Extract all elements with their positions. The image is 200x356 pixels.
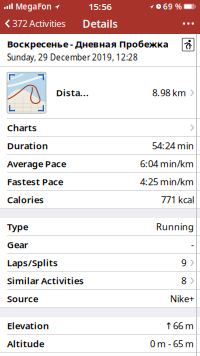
staticText: Running bbox=[156, 220, 194, 233]
button[interactable]: Fastest Pace bbox=[0, 173, 200, 191]
button[interactable]: Average Pace bbox=[0, 155, 200, 173]
staticText: Elevation bbox=[7, 319, 49, 332]
staticText: 8 bbox=[181, 274, 186, 287]
staticText: 0 m - 65 m bbox=[150, 337, 194, 350]
staticText: Source bbox=[7, 292, 38, 305]
button[interactable]: Similar Activities bbox=[0, 272, 200, 290]
staticText: Charts bbox=[7, 121, 37, 134]
staticText: 69 % bbox=[163, 1, 182, 12]
staticText: Type bbox=[7, 220, 28, 233]
staticText: Gear bbox=[7, 238, 28, 251]
staticText: Laps/Splits bbox=[7, 256, 58, 269]
staticText: Duration bbox=[7, 139, 48, 152]
staticText: ↑66 m bbox=[165, 319, 194, 332]
staticText: - bbox=[191, 238, 194, 251]
button[interactable]: Charts bbox=[0, 119, 200, 137]
staticText: Average Pace bbox=[7, 157, 66, 170]
staticText: Altitude bbox=[7, 337, 44, 350]
button[interactable]: Altitude bbox=[0, 335, 200, 353]
button[interactable]: Calories bbox=[0, 191, 200, 209]
staticText: 54:24 min bbox=[152, 139, 194, 152]
staticText: 6:04 min/km bbox=[140, 157, 194, 170]
staticText: 8.98 km bbox=[152, 86, 186, 99]
button[interactable]: More options bbox=[176, 13, 200, 34]
button[interactable]: Gear bbox=[0, 236, 200, 254]
staticText: Dista... bbox=[56, 86, 89, 99]
staticText: 4:25 min/km bbox=[140, 175, 194, 188]
staticText: Similar Activities bbox=[7, 274, 84, 287]
staticText: Details bbox=[82, 16, 117, 31]
staticText: Nike+ bbox=[170, 292, 194, 305]
button[interactable]: Duration bbox=[0, 137, 200, 155]
button[interactable]: 372 Activities bbox=[0, 13, 70, 34]
staticText: MegaFon bbox=[15, 1, 51, 12]
button[interactable]: Dista... bbox=[0, 67, 200, 119]
button[interactable]: Laps/Splits bbox=[0, 254, 200, 272]
button[interactable]: Elevation bbox=[0, 317, 200, 335]
staticText: 15:56 bbox=[88, 0, 111, 13]
staticText: Calories bbox=[7, 193, 44, 206]
staticText: 771 kcal bbox=[161, 193, 194, 206]
staticText: Fastest Pace bbox=[7, 175, 63, 188]
button[interactable]: Source bbox=[0, 290, 200, 308]
staticText: Воскресенье - Дневная Пробежка bbox=[7, 38, 169, 50]
staticText: 9 bbox=[181, 256, 186, 269]
staticText: Sunday, 29 December 2019, 12:28 bbox=[7, 52, 138, 63]
staticText: 372 Activities bbox=[12, 17, 65, 30]
button[interactable]: Type bbox=[0, 218, 200, 236]
